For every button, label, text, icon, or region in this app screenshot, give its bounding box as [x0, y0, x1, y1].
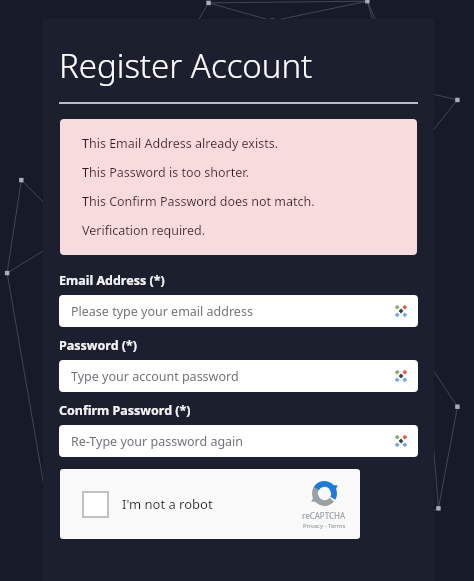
- staticText: This Email Address already exists.: [82, 135, 279, 152]
- staticText: This Confirm Password does not match.: [82, 193, 315, 210]
- other: Autofill: [393, 368, 409, 384]
- staticText: HƯỚNG DẪN: [175, 292, 299, 318]
- staticText: This Password is too shorter.: [82, 164, 249, 181]
- staticText: Privacy - Terms: [303, 522, 346, 530]
- staticText: I'm not a robot: [122, 495, 213, 513]
- staticText: Password (*): [59, 337, 138, 354]
- staticText: Type your account password: [71, 368, 239, 385]
- button[interactable]: Please type your email address: [59, 295, 418, 327]
- staticText: Please type your email address: [71, 303, 253, 320]
- button[interactable]: I'm not a robot: [60, 469, 360, 539]
- button[interactable]: Re-Type your password again: [59, 425, 418, 457]
- staticText: reCAPTCHA: [302, 510, 346, 521]
- staticText: Register Account: [59, 43, 313, 88]
- staticText: Confirm Password (*): [59, 402, 191, 419]
- other: Autofill: [393, 433, 409, 449]
- button[interactable]: Type your account password: [59, 360, 418, 392]
- staticText: Re-Type your password again: [71, 433, 244, 450]
- staticText: Email Address (*): [59, 272, 165, 289]
- staticText: Verification required.: [82, 222, 206, 239]
- staticText: Tất cả những gì bạn cần: [198, 321, 277, 331]
- other: Autofill: [393, 303, 409, 319]
